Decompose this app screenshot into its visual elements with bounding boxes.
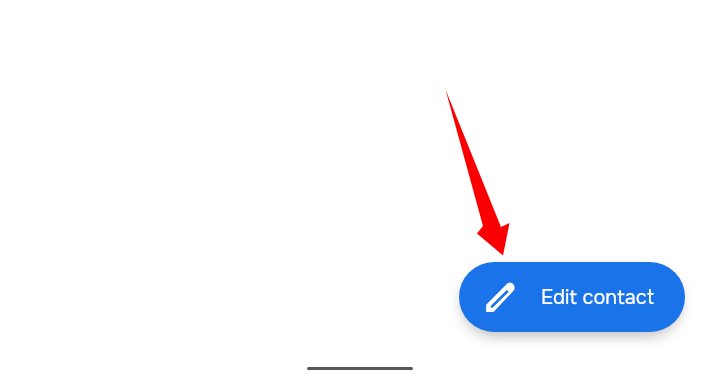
staticText: Edit contact xyxy=(541,285,655,310)
other: Edit contact xyxy=(486,283,515,312)
button[interactable]: Edit contact xyxy=(459,262,685,332)
